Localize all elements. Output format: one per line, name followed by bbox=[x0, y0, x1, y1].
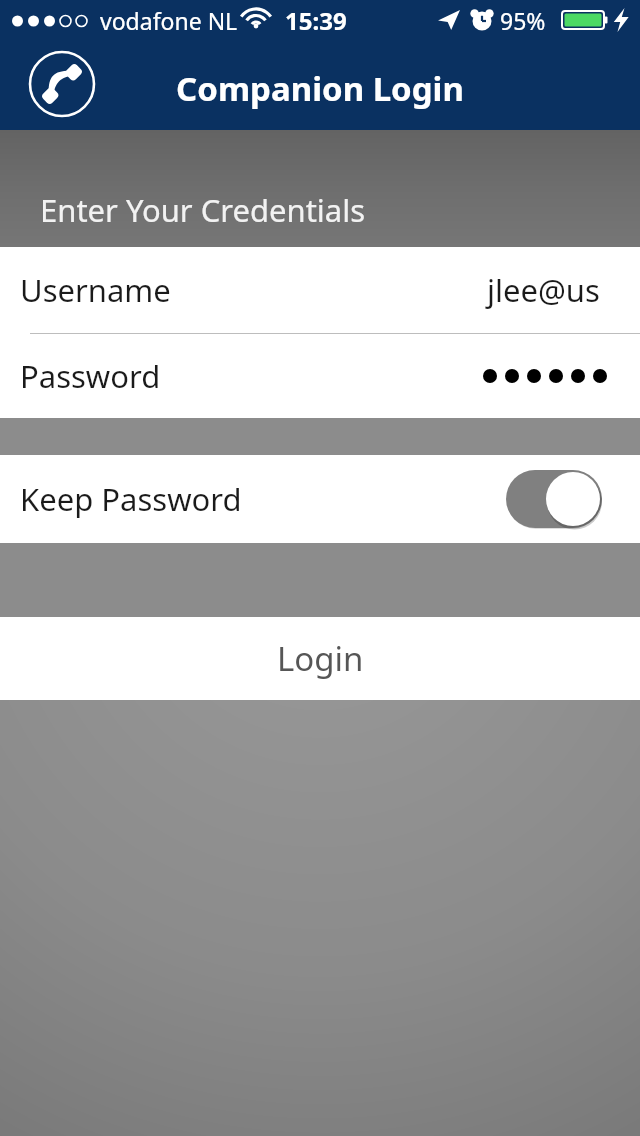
button[interactable]: Keep Password toggle bbox=[506, 470, 602, 528]
staticText: Password bbox=[20, 355, 161, 397]
button[interactable]: Login bbox=[0, 617, 640, 700]
staticText: Username bbox=[20, 269, 171, 311]
staticText: jlee@us bbox=[487, 269, 600, 311]
staticText: Companion Login bbox=[0, 66, 640, 111]
button[interactable]: Call bbox=[28, 50, 96, 118]
staticText: 95% bbox=[500, 5, 546, 36]
staticText: Keep Password bbox=[20, 478, 242, 520]
staticText: 15:39 bbox=[285, 4, 347, 37]
button[interactable]: Username bbox=[0, 247, 640, 333]
staticText: vodafone NL bbox=[100, 5, 238, 36]
button[interactable]: Keep Password bbox=[0, 455, 640, 543]
staticText: Enter Your Credentials bbox=[40, 189, 366, 231]
staticText: Login bbox=[277, 636, 364, 681]
button[interactable]: Password bbox=[0, 334, 640, 418]
